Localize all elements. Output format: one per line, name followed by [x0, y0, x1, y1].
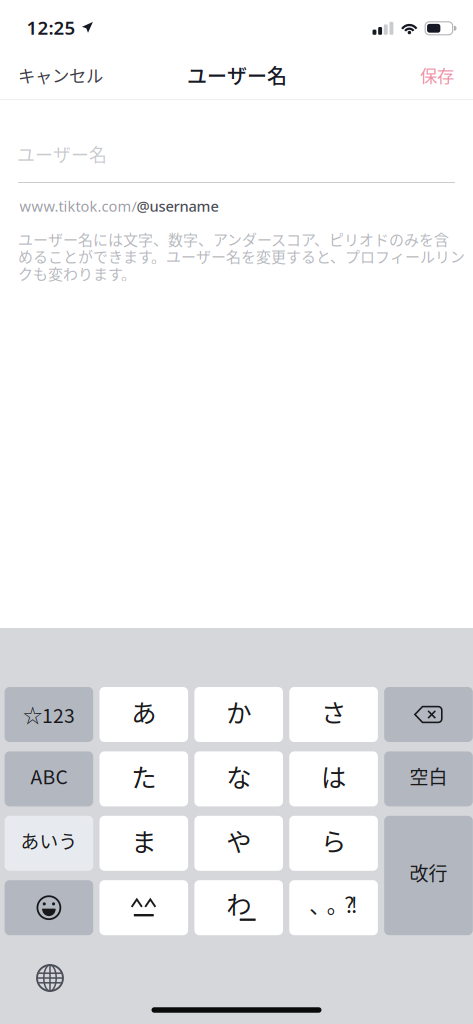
button[interactable]: 空白: [384, 751, 473, 806]
button[interactable]: 改行: [384, 816, 473, 935]
staticText: や: [226, 822, 251, 859]
staticText: ま: [131, 822, 156, 859]
staticText: ユーザー名: [17, 141, 107, 167]
staticText: キャンセル: [18, 62, 103, 88]
staticText: た: [131, 758, 156, 794]
button[interactable]: わ: [194, 880, 283, 935]
staticText: わ: [226, 885, 251, 922]
staticText: めることができます。ユーザー名を変更すると、プロフィールリン: [18, 245, 465, 267]
staticText: @username: [136, 196, 218, 216]
button[interactable]: 保存: [402, 50, 472, 100]
button[interactable]: あいう: [5, 816, 93, 871]
button[interactable]: ABC: [5, 751, 93, 806]
button[interactable]: Numbers and symbols: [5, 687, 93, 742]
staticText: 12:25: [26, 15, 75, 40]
staticText: 保存: [420, 62, 454, 88]
button[interactable]: さ: [289, 687, 378, 742]
staticText: あ: [131, 693, 156, 730]
staticText: な: [226, 758, 251, 794]
button[interactable]: キャンセル: [0, 50, 121, 100]
staticText: www.tiktok.com/: [19, 196, 136, 216]
button[interactable]: Switch keyboard: [27, 955, 73, 1001]
staticText: ユーザー名: [187, 60, 287, 89]
staticText: ABC: [30, 762, 67, 790]
staticText: 改行: [409, 859, 447, 886]
staticText: さ: [321, 693, 346, 730]
button[interactable]: Emoji: [5, 880, 93, 935]
button[interactable]: や: [194, 816, 283, 871]
staticText: ☆123: [23, 700, 75, 728]
button[interactable]: た: [99, 751, 188, 806]
staticText: クも変わります。: [18, 262, 136, 284]
staticText: は: [321, 758, 346, 794]
button[interactable]: ら: [289, 816, 378, 871]
staticText: ら: [321, 822, 346, 859]
button[interactable]: Kaomoji: [99, 880, 188, 935]
staticText: か: [226, 693, 251, 730]
staticText: あいう: [20, 827, 77, 854]
staticText: 空白: [409, 762, 447, 790]
staticText: ユーザー名には文字、数字、アンダースコア、ピリオドのみを含: [18, 228, 449, 250]
button[interactable]: か: [194, 687, 283, 742]
button[interactable]: あ: [99, 687, 188, 742]
button[interactable]: は: [289, 751, 378, 806]
button[interactable]: Delete: [384, 687, 473, 742]
button[interactable]: ま: [99, 816, 188, 871]
button[interactable]: 、。?!: [289, 880, 378, 935]
staticText: 、。?!: [309, 888, 358, 919]
button[interactable]: な: [194, 751, 283, 806]
